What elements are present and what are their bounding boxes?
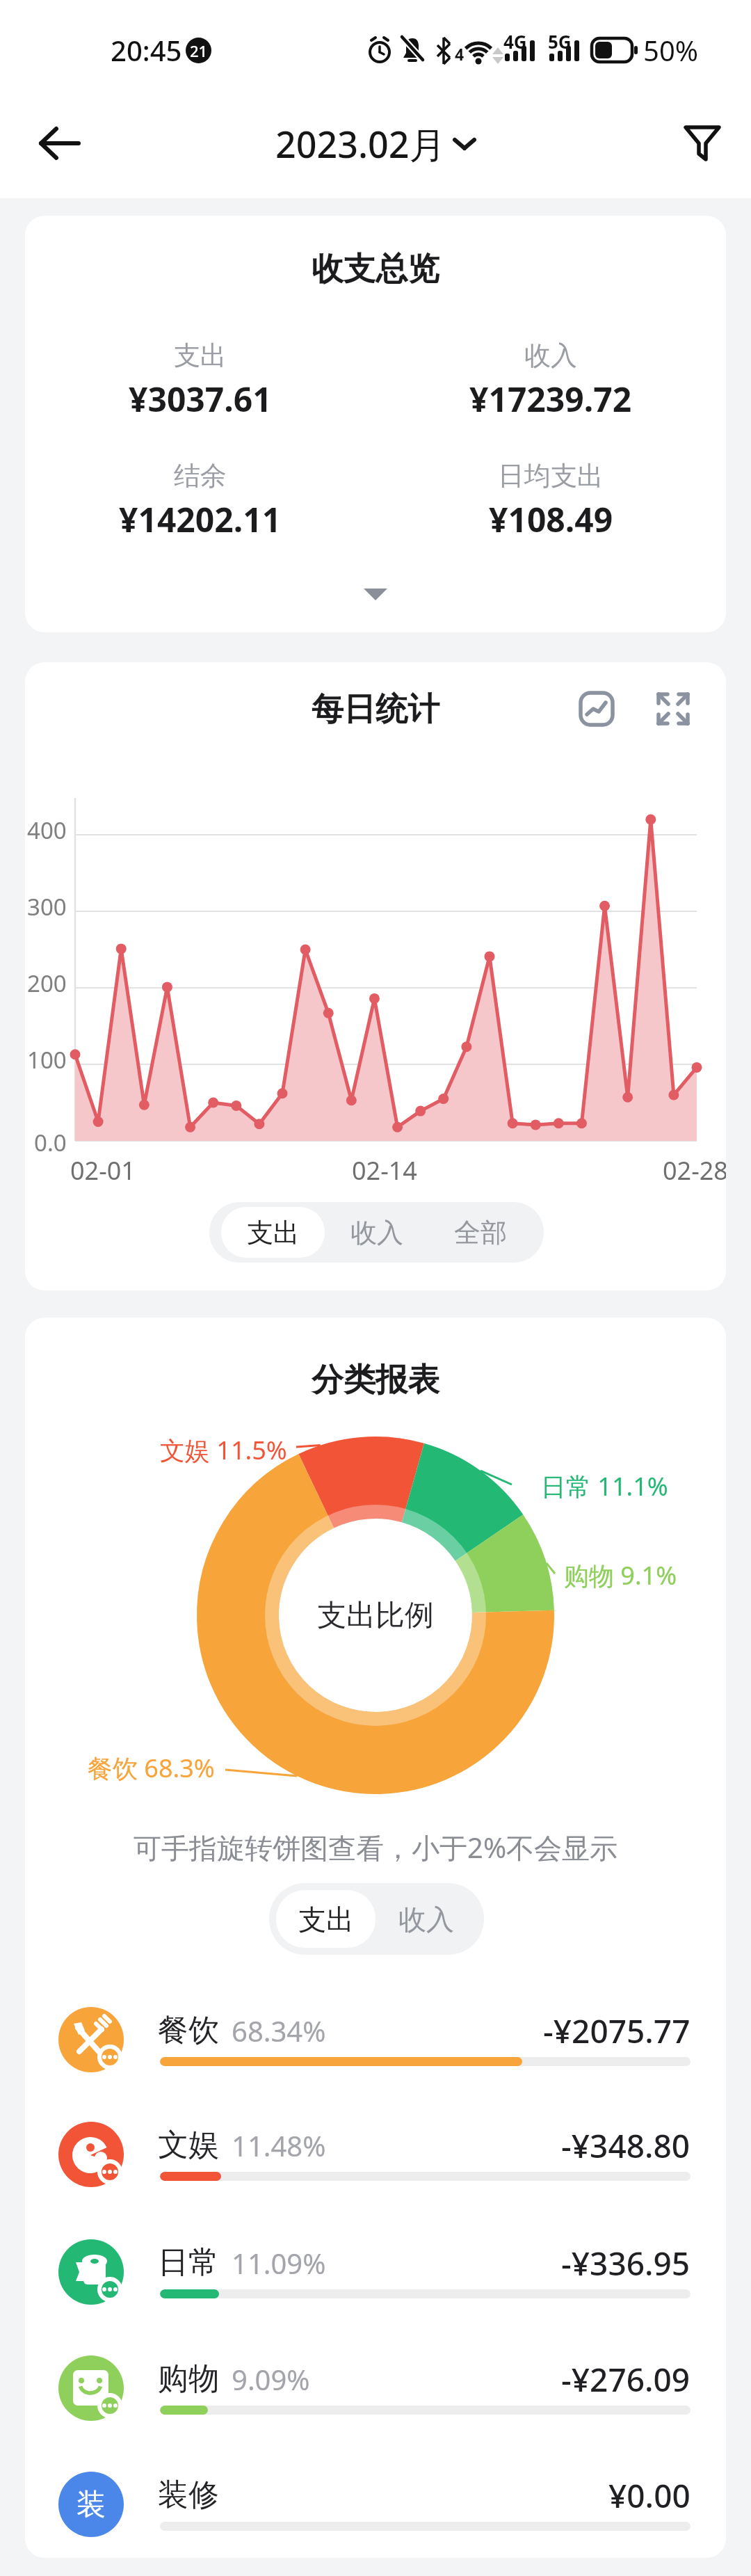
staticText: -¥276.09 <box>561 2358 691 2399</box>
button[interactable]: 支出 <box>276 1890 375 1948</box>
staticText: ¥3037.61 <box>129 376 272 421</box>
staticText: 11.09% <box>232 2244 326 2282</box>
staticText: 餐饮 <box>158 2011 219 2049</box>
staticText: 100 <box>27 1044 67 1072</box>
staticText: 每日统计 <box>312 689 439 730</box>
staticText: 装修 <box>158 2476 219 2514</box>
staticText: 21 <box>190 40 208 61</box>
staticText: 2023.02月 <box>275 119 446 168</box>
staticText: 支出 <box>174 339 227 372</box>
button[interactable] <box>53 2331 700 2445</box>
staticText: 装 <box>76 2486 106 2523</box>
button[interactable]: 2023.02月 <box>275 119 476 168</box>
staticText: -¥336.95 <box>561 2241 691 2283</box>
staticText: ¥14202.11 <box>119 497 282 541</box>
staticText: 文娱 <box>158 2126 219 2164</box>
button[interactable]: 收入 <box>375 1883 477 1955</box>
staticText: 400 <box>27 815 67 842</box>
staticText: 支出 <box>247 1216 300 1249</box>
button[interactable] <box>53 1983 700 2097</box>
staticText: 结余 <box>174 459 227 493</box>
staticText: 日常 11.1% <box>541 1469 668 1503</box>
staticText: 200 <box>27 968 67 995</box>
button[interactable] <box>53 2215 700 2329</box>
staticText: 4 <box>455 43 465 65</box>
staticText: 全部 <box>454 1216 507 1249</box>
staticText: 支出比例 <box>317 1597 434 1634</box>
staticText: 收入 <box>398 1902 454 1937</box>
staticText: 9.09% <box>232 2360 310 2398</box>
staticText: 日均支出 <box>498 459 604 493</box>
button[interactable] <box>350 577 401 611</box>
staticText: ¥0.00 <box>608 2474 691 2515</box>
staticText: 11.48% <box>232 2127 326 2164</box>
staticText: 购物 <box>158 2360 219 2398</box>
staticText: -¥2075.77 <box>543 2009 691 2051</box>
staticText: -¥348.80 <box>561 2124 691 2166</box>
staticText: 4G <box>503 29 527 50</box>
staticText: ¥108.49 <box>489 497 613 541</box>
staticText: 收入 <box>524 339 577 372</box>
staticText: 50% <box>643 31 698 69</box>
button[interactable]: 支出 <box>221 1207 325 1258</box>
staticText: 300 <box>27 891 67 919</box>
button[interactable] <box>31 117 89 170</box>
staticText: 20:45 <box>111 31 182 69</box>
button[interactable] <box>53 2097 700 2211</box>
staticText: 68.34% <box>232 2012 326 2049</box>
staticText: 支出 <box>298 1902 354 1937</box>
button[interactable] <box>53 2447 700 2558</box>
staticText: 02-28 <box>663 1153 726 1184</box>
staticText: 日常 <box>158 2243 219 2282</box>
staticText: 02-01 <box>70 1153 136 1184</box>
button[interactable]: 收入 <box>325 1202 428 1263</box>
staticText: 5G <box>548 29 572 50</box>
button[interactable] <box>673 117 732 170</box>
staticText: 文娱 11.5% <box>160 1433 287 1467</box>
button[interactable] <box>648 684 698 734</box>
staticText: 分类报表 <box>312 1360 439 1400</box>
staticText: 收入 <box>350 1216 403 1249</box>
staticText: 0.0 <box>34 1127 67 1155</box>
staticText: 餐饮 68.3% <box>88 1751 215 1785</box>
staticText: ¥17239.72 <box>469 376 632 421</box>
button[interactable]: 全部 <box>428 1202 532 1263</box>
staticText: 购物 9.1% <box>564 1558 677 1592</box>
staticText: 可手指旋转饼图查看，小于2%不会显示 <box>134 1828 618 1866</box>
staticText: 02-14 <box>352 1153 417 1184</box>
button[interactable] <box>572 684 622 734</box>
staticText: 收支总览 <box>312 249 439 289</box>
